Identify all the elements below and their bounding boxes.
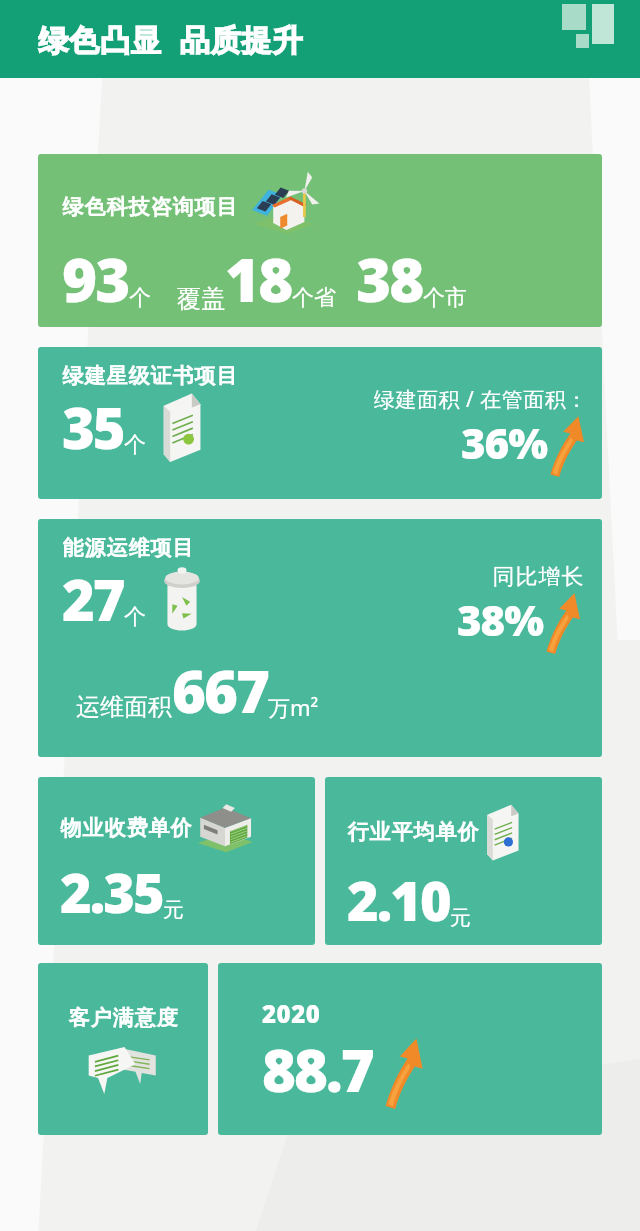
staticText: 个 bbox=[124, 603, 146, 631]
staticText: 个省 bbox=[292, 284, 336, 312]
other: 同比增长 bbox=[544, 592, 584, 654]
button[interactable]: 能源运维项目 bbox=[38, 519, 602, 757]
staticText: 绿色科技咨询项目 bbox=[62, 194, 238, 220]
staticText: 2.35 bbox=[60, 855, 163, 929]
staticText: 个 bbox=[124, 431, 146, 459]
staticText: 88.7 bbox=[262, 1030, 373, 1109]
staticText: 667 bbox=[172, 651, 268, 730]
other: 能源运维 bbox=[154, 565, 210, 637]
staticText: 个 bbox=[129, 284, 151, 312]
staticText: 运维面积 bbox=[76, 692, 172, 722]
staticText: 绿建面积 / 在管面积： bbox=[374, 385, 588, 414]
button[interactable]: 客户满意度 bbox=[38, 963, 208, 1135]
staticText: 行业平均单价 bbox=[347, 819, 479, 845]
other: 提升 bbox=[383, 1037, 427, 1109]
staticText: 18 bbox=[225, 238, 292, 320]
other: 增长 bbox=[548, 415, 588, 477]
button[interactable]: 物业收费单价 bbox=[38, 777, 315, 945]
staticText: 元 bbox=[163, 897, 184, 923]
other: 证书 bbox=[154, 389, 208, 465]
staticText: 93 bbox=[62, 238, 129, 320]
button[interactable]: 2020 bbox=[218, 963, 602, 1135]
staticText: 38 bbox=[356, 238, 423, 320]
staticText: 元 bbox=[450, 905, 471, 931]
staticText: 客户满意度 bbox=[68, 1005, 178, 1031]
staticText: 2020 bbox=[262, 997, 321, 1030]
staticText: 绿色凸显 品质提升 bbox=[38, 19, 304, 60]
staticText: 绿建星级证书项目 bbox=[62, 363, 238, 389]
button[interactable]: 绿色科技咨询项目 bbox=[38, 154, 602, 327]
staticText: 个市 bbox=[423, 284, 467, 312]
staticText: 36% bbox=[461, 414, 548, 471]
staticText: 覆盖 bbox=[177, 284, 225, 314]
button[interactable]: 行业平均单价 bbox=[325, 777, 602, 945]
other: 客户满意度 bbox=[84, 1037, 162, 1099]
staticText: 万m² bbox=[268, 692, 319, 722]
staticText: 能源运维项目 bbox=[62, 535, 194, 561]
staticText: 35 bbox=[62, 389, 124, 465]
staticText: 38% bbox=[457, 591, 544, 648]
staticText: 同比增长 bbox=[492, 563, 584, 591]
other: 物业收费 bbox=[194, 801, 256, 855]
other: 绿色科技咨询 bbox=[242, 176, 320, 238]
button[interactable]: 绿建星级证书项目 bbox=[38, 347, 602, 499]
button[interactable]: 绿色凸显 品质提升 bbox=[0, 0, 640, 78]
staticText: 物业收费单价 bbox=[60, 815, 192, 841]
other: 行业平均 bbox=[479, 801, 525, 863]
staticText: 2.10 bbox=[347, 863, 450, 937]
staticText: 27 bbox=[62, 561, 124, 637]
